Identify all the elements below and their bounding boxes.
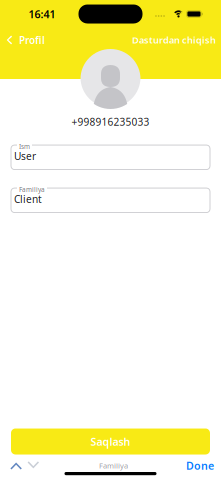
staticText: +998916235033 — [71, 115, 149, 129]
staticText: Ism — [19, 142, 30, 151]
button[interactable]: Saqlash — [0, 428, 221, 454]
button[interactable]: Profil — [0, 30, 45, 50]
button[interactable]: Done — [180, 455, 220, 476]
button[interactable]: Dasturdan chiqish — [132, 31, 221, 49]
staticText: Saqlash — [90, 434, 130, 449]
button[interactable]: Previous field — [5, 458, 27, 473]
staticText: Familiya — [99, 460, 128, 471]
staticText: Done — [186, 458, 214, 473]
staticText: Dasturdan chiqish — [132, 34, 216, 46]
staticText: User — [14, 149, 36, 163]
staticText: Profil — [19, 33, 45, 47]
staticText: Client — [14, 192, 42, 206]
staticText: Familiya — [19, 185, 45, 194]
button[interactable]: Next field — [27, 458, 47, 473]
staticText: 16:41 — [28, 7, 55, 21]
